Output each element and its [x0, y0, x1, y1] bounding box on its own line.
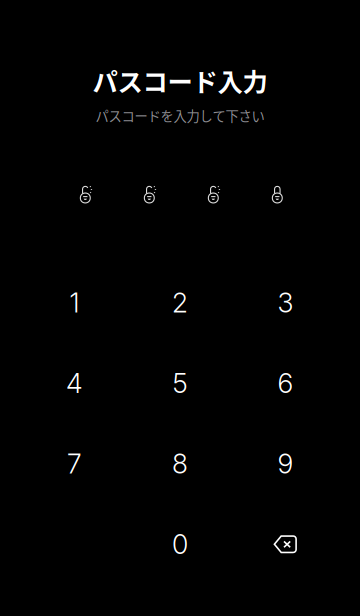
button[interactable]: Delete: [233, 504, 338, 584]
button[interactable]: 8: [127, 423, 233, 504]
staticText: 1: [69, 287, 79, 319]
staticText: 0: [172, 528, 188, 560]
staticText: 5: [172, 367, 187, 399]
staticText: 7: [67, 448, 82, 480]
staticText: 3: [277, 287, 293, 319]
staticText: パスコード入力: [92, 62, 267, 99]
button[interactable]: 5: [127, 343, 233, 423]
staticText: 6: [277, 367, 293, 399]
staticText: 2: [172, 287, 188, 319]
staticText: 4: [66, 367, 83, 399]
button[interactable]: 7: [22, 423, 127, 504]
staticText: パスコードを入力して下さい: [95, 106, 264, 125]
staticText: 8: [172, 448, 188, 480]
button[interactable]: 1: [22, 262, 127, 343]
button[interactable]: 2: [127, 262, 233, 343]
button[interactable]: 6: [233, 343, 338, 423]
button[interactable]: 9: [233, 423, 338, 504]
button[interactable]: 0: [127, 504, 233, 584]
button[interactable]: 3: [233, 262, 338, 343]
button[interactable]: 4: [22, 343, 127, 423]
staticText: 9: [277, 448, 293, 480]
